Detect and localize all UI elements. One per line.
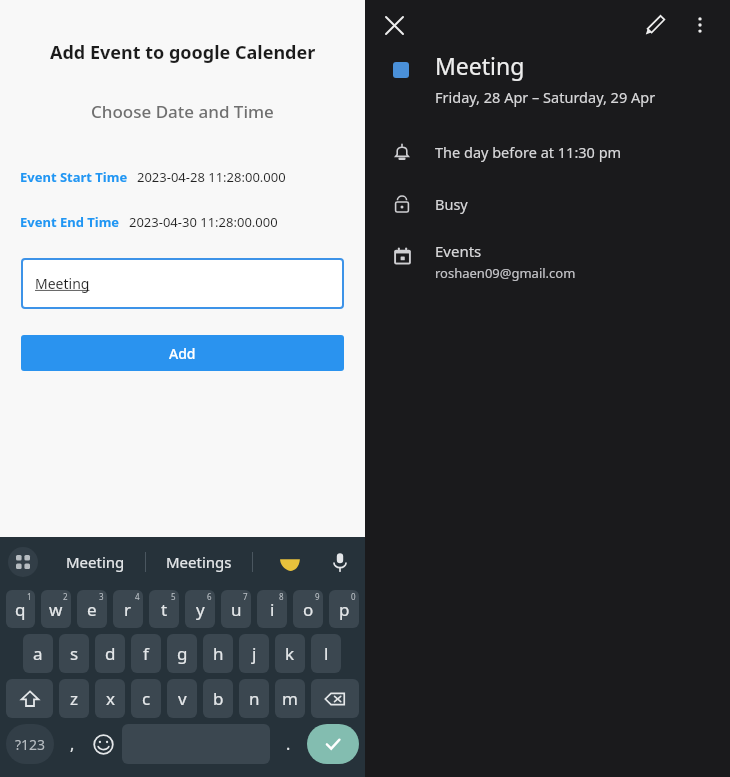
- button[interactable]: s: [59, 634, 89, 673]
- button[interactable]: Busy: [365, 189, 730, 219]
- button[interactable]: t: [149, 590, 179, 628]
- button[interactable]: ?123: [6, 724, 54, 764]
- button[interactable]: l: [311, 634, 341, 673]
- staticText: w: [49, 598, 63, 621]
- staticText: l: [324, 642, 329, 665]
- staticText: ?123: [15, 735, 46, 754]
- button[interactable]: o: [293, 590, 323, 628]
- staticText: y: [196, 598, 205, 621]
- button[interactable]: g: [167, 634, 197, 673]
- button[interactable]: Meeting: [21, 258, 344, 309]
- staticText: f: [143, 642, 149, 665]
- button[interactable]: d: [95, 634, 125, 673]
- staticText: roshaen09@gmail.com: [435, 264, 576, 282]
- button[interactable]: .: [276, 724, 301, 764]
- staticText: 3: [99, 591, 104, 602]
- button[interactable]: Backspace: [311, 679, 359, 718]
- staticText: x: [106, 687, 115, 710]
- button[interactable]: Meeting: [365, 50, 730, 107]
- button[interactable]: More options: [680, 6, 720, 44]
- button[interactable]: r: [113, 590, 143, 628]
- staticText: i: [270, 598, 275, 621]
- button[interactable]: Meeting: [60, 544, 131, 580]
- button[interactable]: The day before at 11:30 pm: [365, 137, 730, 167]
- button[interactable]: p: [329, 590, 359, 628]
- button[interactable]: n: [239, 679, 269, 718]
- staticText: v: [178, 687, 187, 710]
- button[interactable]: c: [131, 679, 161, 718]
- staticText: m: [282, 687, 298, 710]
- staticText: j: [252, 642, 257, 665]
- staticText: 5: [171, 591, 176, 602]
- button[interactable]: u: [221, 590, 251, 628]
- button[interactable]: e: [77, 590, 107, 628]
- staticText: d: [105, 642, 116, 665]
- staticText: t: [161, 598, 168, 621]
- button[interactable]: ,: [60, 724, 85, 764]
- staticText: o: [303, 598, 314, 621]
- button[interactable]: a: [23, 634, 53, 673]
- staticText: 0: [351, 591, 356, 602]
- staticText: Meeting: [435, 50, 525, 81]
- staticText: 1: [27, 591, 32, 602]
- staticText: 2023-04-30 11:28:00.000: [129, 213, 278, 231]
- staticText: q: [15, 598, 26, 621]
- button[interactable]: w: [41, 590, 71, 628]
- button[interactable]: Keyboard toolbar: [8, 547, 38, 577]
- staticText: Event End Time: [20, 213, 120, 231]
- button[interactable]: v: [167, 679, 197, 718]
- button[interactable]: z: [59, 679, 89, 718]
- button[interactable]: m: [275, 679, 305, 718]
- button[interactable]: Meetings: [160, 544, 238, 580]
- staticText: a: [33, 642, 43, 665]
- button[interactable]: Emoji: [91, 724, 116, 764]
- button[interactable]: Close: [375, 6, 413, 44]
- staticText: Events: [435, 241, 482, 261]
- staticText: The day before at 11:30 pm: [435, 142, 622, 162]
- button[interactable]: Sticker: [273, 545, 307, 579]
- staticText: 6: [207, 591, 212, 602]
- staticText: 9: [315, 591, 320, 602]
- button[interactable]: Event Start Time: [20, 165, 365, 189]
- button[interactable]: b: [203, 679, 233, 718]
- staticText: Meeting: [35, 274, 90, 293]
- staticText: Choose Date and Time: [91, 100, 274, 123]
- staticText: u: [231, 598, 242, 621]
- staticText: 8: [279, 591, 284, 602]
- button[interactable]: y: [185, 590, 215, 628]
- button[interactable]: f: [131, 634, 161, 673]
- button[interactable]: Add: [21, 335, 344, 371]
- staticText: Add Event to google Calender: [50, 40, 316, 65]
- staticText: e: [87, 598, 97, 621]
- staticText: 2023-04-28 11:28:00.000: [137, 168, 286, 186]
- staticText: Friday, 28 Apr – Saturday, 29 Apr: [435, 87, 656, 107]
- button[interactable]: Voice input: [323, 545, 357, 579]
- staticText: c: [142, 687, 151, 710]
- staticText: .: [286, 733, 291, 755]
- button[interactable]: k: [275, 634, 305, 673]
- staticText: Add: [169, 344, 196, 363]
- staticText: p: [339, 598, 350, 621]
- staticText: 2: [63, 591, 68, 602]
- staticText: s: [70, 642, 79, 665]
- staticText: Event Start Time: [20, 168, 128, 186]
- staticText: k: [285, 642, 295, 665]
- button[interactable]: i: [257, 590, 287, 628]
- button[interactable]: h: [203, 634, 233, 673]
- staticText: n: [249, 687, 260, 710]
- button[interactable]: Edit: [635, 6, 675, 44]
- button[interactable]: x: [95, 679, 125, 718]
- button[interactable]: q: [6, 590, 35, 628]
- staticText: g: [177, 642, 188, 665]
- staticText: b: [213, 687, 224, 710]
- button[interactable]: Event End Time: [20, 210, 365, 234]
- staticText: Busy: [435, 194, 468, 214]
- staticText: 4: [135, 591, 140, 602]
- button[interactable]: Enter: [307, 724, 359, 764]
- button[interactable]: j: [239, 634, 269, 673]
- button[interactable]: Events: [365, 241, 730, 290]
- button[interactable]: Shift: [6, 679, 53, 718]
- staticText: Meetings: [166, 552, 232, 572]
- staticText: 7: [243, 591, 248, 602]
